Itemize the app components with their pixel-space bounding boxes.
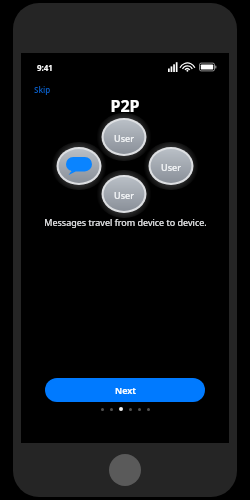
staticText: Next xyxy=(115,384,136,396)
button[interactable]: Skip xyxy=(27,81,58,98)
button[interactable]: Page 4 xyxy=(129,408,132,411)
staticText: Skip xyxy=(34,84,51,95)
staticText: User xyxy=(114,189,134,201)
button[interactable]: User xyxy=(149,160,193,173)
button[interactable]: Page 3 xyxy=(119,407,123,411)
button[interactable]: Page 1 xyxy=(101,408,104,411)
button[interactable]: Page 6 xyxy=(147,408,150,411)
button[interactable]: User xyxy=(102,188,146,201)
button[interactable]: User xyxy=(102,131,146,144)
staticText: User xyxy=(161,161,181,173)
staticText: 9:41 xyxy=(37,62,53,73)
button[interactable]: User xyxy=(57,160,101,173)
other: Message bubble xyxy=(66,157,92,175)
staticText: Messages travel from device to device. xyxy=(44,216,207,228)
button[interactable]: Page 5 xyxy=(138,408,141,411)
button[interactable]: Page 2 xyxy=(110,408,113,411)
button[interactable]: Next xyxy=(45,378,205,402)
staticText: User xyxy=(114,132,134,144)
button[interactable]: Home xyxy=(109,454,141,486)
staticText: P2P xyxy=(110,95,140,117)
staticText: User xyxy=(69,161,89,173)
